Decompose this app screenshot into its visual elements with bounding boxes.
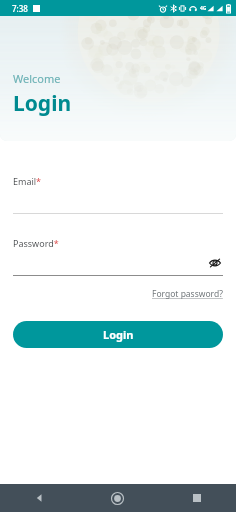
button[interactable]: Password* — [13, 237, 223, 276]
staticText: Email* — [13, 175, 42, 187]
button[interactable]: Back — [0, 484, 78, 512]
staticText: Password* — [13, 237, 59, 249]
staticText: Login — [103, 327, 134, 342]
button[interactable]: Show password — [207, 255, 223, 271]
button[interactable]: Forgot password? — [152, 288, 223, 300]
button[interactable]: Login — [13, 321, 223, 348]
button[interactable]: Home — [78, 484, 157, 512]
staticText: Forgot password? — [152, 288, 223, 300]
staticText: 4G — [200, 5, 207, 12]
staticText: Login — [13, 89, 72, 118]
staticText: 7:38 — [12, 3, 28, 14]
button[interactable]: Recent apps — [157, 484, 236, 512]
staticText: Welcome — [13, 71, 61, 86]
button[interactable]: Email* — [13, 175, 223, 214]
